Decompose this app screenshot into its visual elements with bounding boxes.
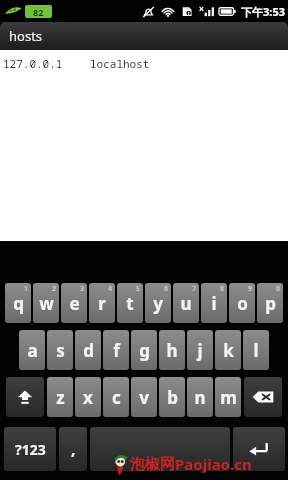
button[interactable]: y: [145, 283, 171, 323]
button[interactable]: o: [229, 283, 255, 323]
staticText: b: [167, 386, 178, 409]
button[interactable]: t: [117, 283, 143, 323]
staticText: w: [39, 292, 54, 315]
button[interactable]: z: [47, 377, 73, 417]
staticText: 6: [164, 284, 169, 294]
staticText: 8: [220, 284, 225, 294]
staticText: d: [83, 339, 94, 362]
button[interactable]: c: [103, 377, 129, 417]
button[interactable]: hosts: [0, 22, 288, 50]
staticText: hosts: [9, 27, 43, 45]
button[interactable]: n: [187, 377, 213, 417]
staticText: 9: [248, 284, 253, 294]
staticText: h: [166, 339, 178, 362]
button[interactable]: Shift: [6, 377, 44, 417]
staticText: 2: [52, 284, 57, 294]
staticText: 0: [276, 284, 281, 294]
button[interactable]: u: [173, 283, 199, 323]
staticText: u: [180, 292, 192, 315]
button[interactable]: w: [33, 283, 59, 323]
button[interactable]: l: [243, 330, 269, 370]
button[interactable]: x: [75, 377, 101, 417]
staticText: Paojiao.cn: [175, 454, 252, 474]
staticText: localhost: [90, 56, 150, 71]
staticText: x: [83, 386, 93, 409]
staticText: s: [56, 339, 65, 362]
button[interactable]: m: [215, 377, 241, 417]
staticText: t: [126, 292, 134, 315]
button[interactable]: v: [131, 377, 157, 417]
button[interactable]: q: [5, 283, 31, 323]
staticText: e: [69, 292, 80, 315]
button[interactable]: b: [159, 377, 185, 417]
staticText: j: [197, 339, 203, 362]
button[interactable]: j: [187, 330, 213, 370]
button[interactable]: Space: [90, 427, 230, 471]
button[interactable]: a: [19, 330, 45, 370]
button[interactable]: d: [75, 330, 101, 370]
staticText: f: [113, 339, 120, 362]
staticText: m: [220, 386, 237, 409]
staticText: n: [194, 386, 206, 409]
staticText: 3: [80, 284, 85, 294]
button[interactable]: k: [215, 330, 241, 370]
button[interactable]: g: [131, 330, 157, 370]
staticText: k: [223, 339, 234, 362]
staticText: 82: [33, 6, 44, 18]
staticText: g: [139, 339, 150, 362]
button[interactable]: h: [159, 330, 185, 370]
staticText: c: [112, 386, 121, 409]
staticText: q: [13, 292, 24, 315]
button[interactable]: e: [61, 283, 87, 323]
staticText: 4: [108, 284, 113, 294]
staticText: 泡椒网: [130, 455, 175, 474]
staticText: p: [265, 292, 276, 315]
staticText: ,: [71, 438, 76, 460]
staticText: i: [211, 292, 217, 315]
button[interactable]: ?123: [4, 427, 56, 471]
staticText: r: [98, 292, 106, 315]
button[interactable]: i: [201, 283, 227, 323]
button[interactable]: ,: [59, 427, 87, 471]
staticText: y: [153, 292, 163, 315]
staticText: 5: [136, 284, 141, 294]
staticText: v: [139, 386, 149, 409]
staticText: 下午3:53: [241, 4, 285, 19]
staticText: o: [237, 292, 248, 315]
staticText: l: [253, 339, 259, 362]
staticText: ?123: [15, 440, 46, 459]
staticText: 127.0.0.1: [3, 56, 63, 71]
button[interactable]: f: [103, 330, 129, 370]
button[interactable]: p: [257, 283, 283, 323]
staticText: 7: [192, 284, 197, 294]
button[interactable]: Enter: [233, 427, 285, 471]
staticText: a: [27, 339, 38, 362]
staticText: 1: [24, 284, 29, 294]
button[interactable]: s: [47, 330, 73, 370]
staticText: z: [56, 386, 65, 409]
button[interactable]: r: [89, 283, 115, 323]
button[interactable]: Backspace: [244, 377, 282, 417]
